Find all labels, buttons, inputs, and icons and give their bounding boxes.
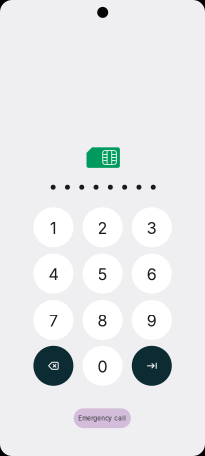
button[interactable]: Emergency call [74, 408, 131, 428]
button[interactable]: Delete [33, 346, 73, 386]
button[interactable]: 4 [33, 254, 73, 294]
button[interactable]: 0 [83, 346, 123, 386]
staticText: 4 [48, 265, 58, 284]
button[interactable]: 2 [83, 207, 123, 247]
staticText: 8 [98, 311, 108, 330]
staticText: 1 [50, 218, 57, 238]
button[interactable]: 6 [132, 254, 172, 294]
staticText: 0 [98, 357, 108, 376]
staticText: 7 [49, 311, 58, 330]
staticText: 3 [147, 218, 157, 238]
button[interactable]: 3 [132, 207, 172, 247]
staticText: 2 [98, 218, 108, 238]
button[interactable]: 9 [132, 300, 172, 340]
button[interactable]: 8 [83, 300, 123, 340]
staticText: Emergency call [78, 414, 126, 422]
button[interactable]: Submit PIN [132, 346, 172, 386]
button[interactable]: 7 [33, 300, 73, 340]
button[interactable]: 1 [33, 207, 73, 247]
button[interactable]: 5 [83, 254, 123, 294]
staticText: 9 [147, 311, 157, 330]
staticText: 6 [147, 265, 157, 284]
staticText: 5 [98, 265, 108, 284]
